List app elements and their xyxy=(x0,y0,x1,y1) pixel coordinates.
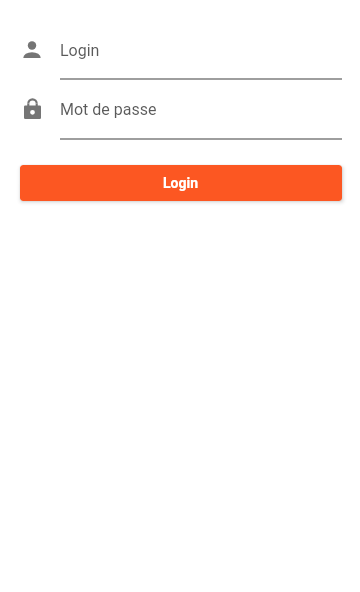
staticText: Mot de passe xyxy=(60,100,157,119)
other: Password xyxy=(24,98,41,119)
staticText: Login xyxy=(60,41,100,60)
button[interactable]: Login xyxy=(20,165,342,201)
staticText: Login xyxy=(163,175,199,191)
other: Login xyxy=(23,41,41,58)
button[interactable]: Mot de passe xyxy=(60,96,342,138)
button[interactable]: Login xyxy=(60,36,342,78)
